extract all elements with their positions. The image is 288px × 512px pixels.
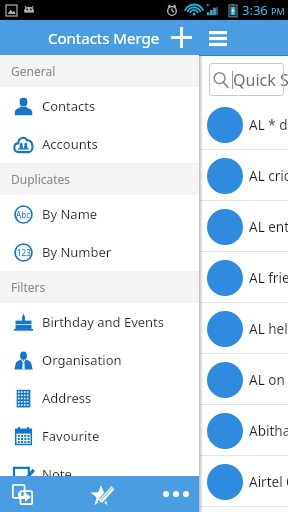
button[interactable]: AL friends <box>0 252 288 303</box>
staticText: By Number <box>42 243 112 261</box>
staticText: Contacts Merge <box>48 28 160 48</box>
button[interactable]: Address <box>0 379 199 417</box>
staticText: General <box>11 63 56 79</box>
button[interactable]: Menu <box>201 21 235 55</box>
button[interactable]: AL hello <box>0 303 288 354</box>
button[interactable]: Airtel 012 <box>0 456 288 507</box>
button[interactable]: Edit favourites <box>80 476 126 512</box>
button[interactable]: Merge <box>0 476 45 512</box>
button[interactable]: Birthday and Events <box>0 303 199 341</box>
staticText: AL entertain <box>249 218 288 236</box>
staticText: Accounts <box>42 135 98 153</box>
staticText: Note <box>42 465 72 483</box>
button[interactable]: 123 <box>0 233 199 271</box>
button[interactable]: Organisation <box>0 341 199 379</box>
staticText: Organisation <box>42 351 122 369</box>
staticText: Contacts <box>42 97 96 115</box>
staticText: Abitha <box>249 422 288 440</box>
staticText: By Name <box>42 205 98 223</box>
staticText: AL * diamond <box>249 116 288 134</box>
button[interactable]: Note <box>0 455 199 493</box>
staticText: AL on call <box>249 371 288 389</box>
staticText: AL cricket <box>249 167 288 185</box>
staticText: Airtel 012 <box>249 473 288 491</box>
staticText: PM <box>271 5 285 17</box>
button[interactable]: AL cricket <box>0 150 288 201</box>
staticText: 3:36 <box>242 1 268 19</box>
staticText: Birthday and Events <box>42 313 165 331</box>
staticText: Address <box>42 389 92 407</box>
button[interactable]: Contacts <box>0 87 199 125</box>
staticText: 123 <box>17 247 31 258</box>
button[interactable]: AL entertain <box>0 201 288 252</box>
button[interactable]: Abc <box>0 195 199 233</box>
button[interactable]: AL * diamond <box>0 99 288 150</box>
staticText: AL friends <box>249 269 288 287</box>
button[interactable]: More options <box>153 476 199 512</box>
button[interactable]: Add <box>165 21 198 54</box>
staticText: Duplicates <box>11 171 71 187</box>
button[interactable]: Quick Search <box>209 63 284 96</box>
staticText: Favourite <box>42 427 100 445</box>
staticText: Abc <box>16 209 31 220</box>
button[interactable]: Abitha <box>0 405 288 456</box>
staticText: Quick Search <box>233 69 288 91</box>
staticText: Filters <box>11 279 46 295</box>
button[interactable]: Accounts <box>0 125 199 163</box>
button[interactable]: Favourite <box>0 417 199 455</box>
staticText: AL hello <box>249 320 288 338</box>
button[interactable]: AL on call <box>0 354 288 405</box>
